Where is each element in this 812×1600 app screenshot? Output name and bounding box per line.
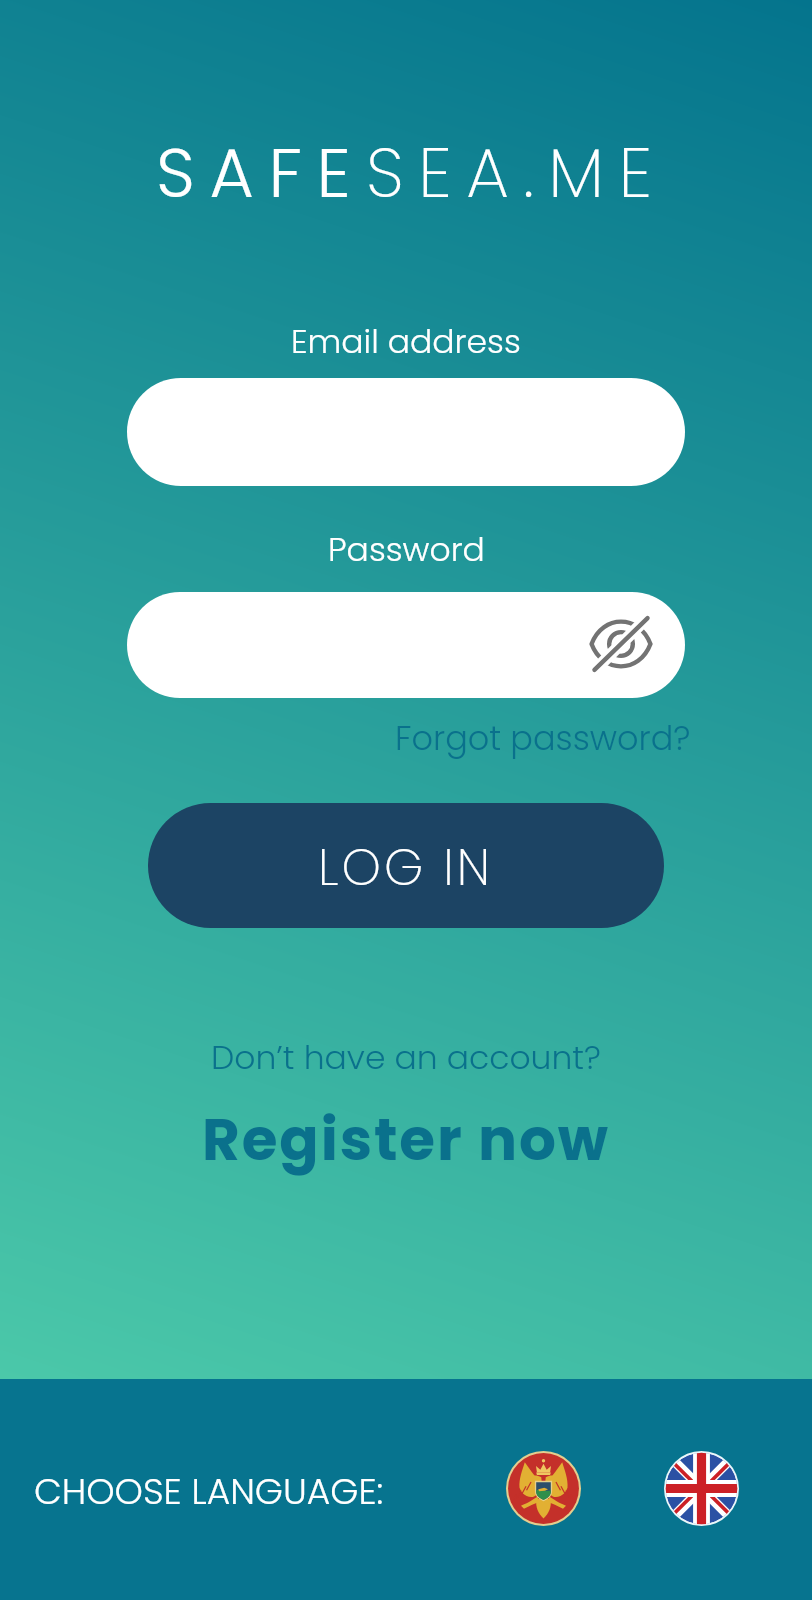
button[interactable]: Show password [127, 592, 685, 698]
button[interactable]: English language [664, 1451, 739, 1526]
staticText: Don’t have an account? [211, 1034, 601, 1080]
button[interactable]: LOG IN [148, 803, 664, 928]
staticText: LOG IN [318, 833, 494, 903]
staticText: SEA.ME [366, 126, 667, 221]
button[interactable]: Forgot password? [395, 715, 691, 762]
button[interactable]: Show password [588, 612, 654, 678]
staticText: Password [328, 526, 485, 572]
button[interactable]: Register now [202, 1099, 610, 1180]
staticText: SAFE [156, 126, 366, 221]
button[interactable]: Montenegrin language [506, 1451, 581, 1526]
staticText: Email address [291, 318, 521, 364]
button[interactable] [127, 378, 685, 486]
staticText: CHOOSE LANGUAGE: [34, 1466, 384, 1516]
